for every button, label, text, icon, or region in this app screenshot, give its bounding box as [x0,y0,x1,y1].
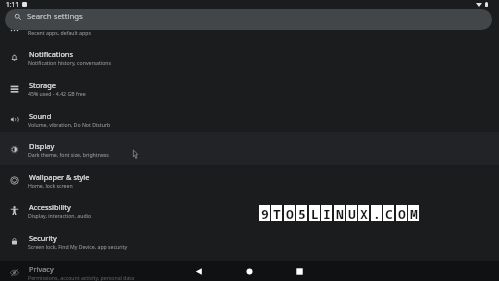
staticText: Search settings [27,11,83,22]
staticText: 45% used - 4.42 GB free [28,90,86,97]
staticText: Display [29,141,55,151]
button[interactable]: Sound [0,101,499,132]
staticText: Accessibility [29,202,71,212]
button[interactable]: Privacy [0,254,499,281]
staticText: N [336,205,344,221]
staticText: Screen lock, Find My Device, app securit… [28,243,128,250]
staticText: Dark theme, font size, brightness [28,151,109,158]
staticText: O [286,205,294,221]
staticText: Recent apps, default apps [28,29,91,36]
staticText: Privacy [29,264,54,274]
button[interactable]: Display [0,131,499,162]
staticText: Home, lock screen [28,182,73,189]
staticText: M [410,205,418,221]
staticText: Storage [29,80,56,90]
staticText: O [398,205,406,221]
staticText: 1:11 [6,0,20,9]
staticText: Notification history, conversations [28,59,112,66]
button[interactable]: Back [186,261,210,281]
button[interactable]: Recent apps [287,261,311,281]
button[interactable]: Security [0,223,499,254]
button[interactable]: Storage [0,70,499,101]
button[interactable]: Search settings [5,9,492,30]
staticText: Wallpaper & style [29,172,90,182]
button[interactable]: Wallpaper & style [0,162,499,193]
button[interactable]: Notifications [0,39,499,70]
staticText: Display, interaction, audio [28,212,92,219]
button[interactable]: Accessibility [0,192,499,223]
staticText: X [360,205,368,221]
staticText: Sound [29,111,52,121]
button[interactable]: Home [237,261,261,281]
staticText: T [273,205,281,221]
staticText: 9 [261,205,269,221]
staticText: U [348,205,356,221]
staticText: 5 [298,205,306,221]
staticText: . [373,205,381,221]
staticText: Volume, vibration, Do Not Disturb [28,121,111,128]
staticText: I [323,205,331,221]
staticText: Notifications [29,49,73,59]
staticText: L [311,205,319,221]
button[interactable]: Apps [0,9,499,40]
staticText: C [385,205,393,221]
staticText: Permissions, account activity, personal … [28,274,135,281]
staticText: Security [29,233,57,243]
